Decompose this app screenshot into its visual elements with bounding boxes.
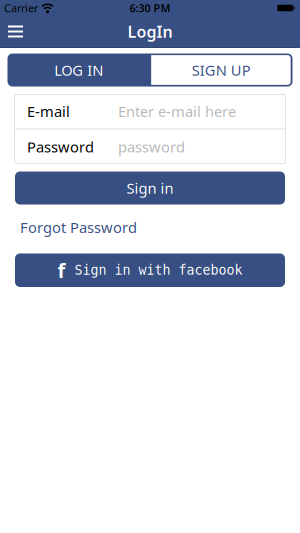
staticText: Password	[27, 137, 94, 156]
button[interactable]: Forgot Password	[20, 217, 137, 237]
button[interactable]: f	[15, 253, 285, 287]
staticText: LOG IN	[54, 60, 103, 80]
button[interactable]	[0, 25, 23, 37]
button[interactable]: LOG IN	[7, 53, 150, 86]
button[interactable]: E-mail	[14, 94, 286, 128]
staticText: E-mail	[27, 101, 70, 121]
button[interactable]: Sign in	[15, 171, 285, 204]
staticText: Enter e-mail here	[118, 101, 236, 121]
staticText: SIGN UP	[192, 60, 251, 80]
button[interactable]: SIGN UP	[150, 53, 292, 86]
staticText: Carrier	[4, 1, 38, 15]
staticText: 6:30 PM	[129, 1, 170, 15]
button[interactable]: Password	[14, 129, 286, 164]
staticText: f	[57, 257, 65, 283]
staticText: Sign in	[126, 178, 173, 198]
staticText: password	[118, 137, 185, 156]
staticText: Sign in with facebook	[74, 263, 242, 278]
staticText: LogIn	[127, 21, 172, 42]
staticText: Forgot Password	[20, 217, 137, 237]
